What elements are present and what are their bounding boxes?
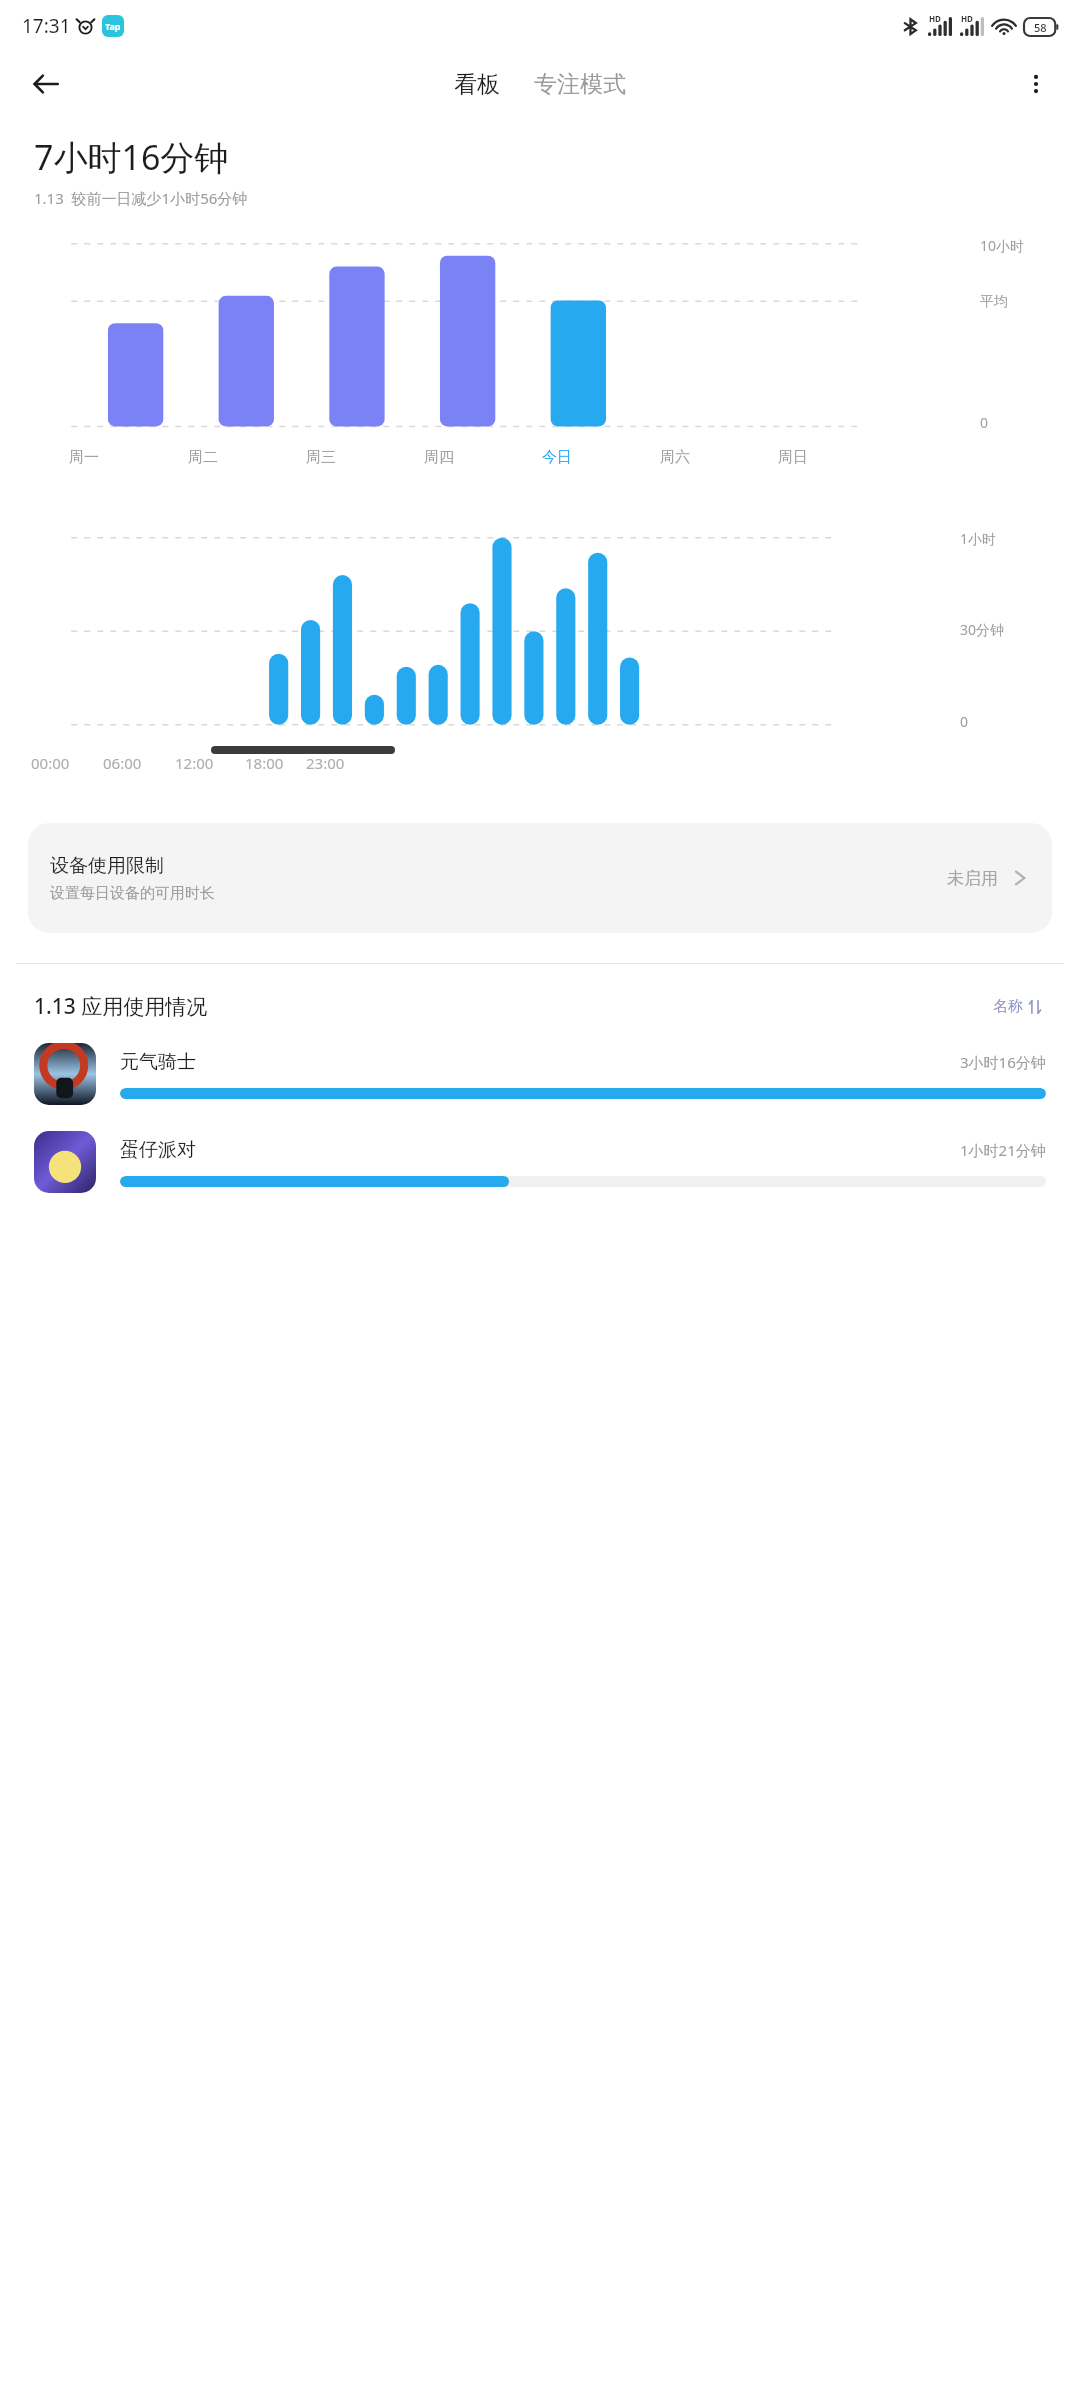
button[interactable]: 周四 (380, 448, 498, 467)
button[interactable]: More options (1012, 60, 1060, 108)
button[interactable]: 周日 (734, 448, 852, 467)
staticText: 元气骑士 (120, 1050, 960, 1074)
staticText: HD (961, 13, 973, 24)
staticText: 0 (960, 712, 969, 731)
staticText: 看板 (454, 70, 500, 99)
staticText: 周四 (424, 448, 454, 467)
staticText: 0 (980, 413, 989, 432)
staticText: 1小时21分钟 (960, 1140, 1046, 1160)
button[interactable]: 周三 (262, 448, 380, 467)
staticText: HD (929, 13, 941, 24)
staticText: 30分钟 (960, 620, 1005, 639)
staticText: 周一 (69, 448, 99, 467)
staticText: 00:00 (31, 753, 70, 773)
staticText: 周六 (660, 448, 690, 467)
staticText: 名称 (993, 997, 1023, 1016)
staticText: 10小时 (980, 236, 1025, 255)
staticText: 06:00 (103, 753, 142, 773)
button[interactable]: 今日 (498, 448, 616, 467)
button[interactable]: 周二 (143, 448, 262, 467)
staticText: 1小时 (960, 529, 997, 548)
staticText: 1.13 较前一日减少1小时56分钟 (34, 188, 248, 208)
staticText: 3小时16分钟 (960, 1052, 1046, 1072)
staticText: 周二 (188, 448, 218, 467)
staticText: 周三 (306, 448, 336, 467)
staticText: 12:00 (175, 753, 214, 773)
staticText: 17:31 (22, 13, 71, 39)
staticText: 设置每日设备的可用时长 (50, 884, 215, 903)
button[interactable]: Back (22, 60, 70, 108)
staticText: 18:00 (245, 753, 284, 773)
button[interactable]: 周六 (616, 448, 734, 467)
button[interactable]: 蛋仔派对 (0, 1131, 1080, 1193)
staticText: 周日 (778, 448, 808, 467)
staticText: 今日 (542, 448, 572, 467)
staticText: 平均 (980, 293, 1008, 311)
staticText: 未启用 (947, 868, 998, 889)
staticText: 23:00 (306, 753, 345, 773)
staticText: 58 (1034, 20, 1047, 35)
staticText: 设备使用限制 (50, 854, 164, 878)
button[interactable]: 名称 (989, 993, 1046, 1020)
button[interactable]: 设备使用限制 (28, 823, 1052, 933)
staticText: 1.13 应用使用情况 (34, 992, 989, 1021)
button[interactable]: 看板 (448, 64, 506, 105)
button[interactable]: 元气骑士 (0, 1043, 1080, 1105)
button[interactable]: 专注模式 (528, 64, 632, 105)
button[interactable]: 周一 (24, 448, 143, 467)
staticText: 7小时16分钟 (34, 134, 229, 180)
staticText: Tap (105, 20, 121, 32)
staticText: 专注模式 (534, 70, 626, 99)
staticText: 蛋仔派对 (120, 1138, 960, 1162)
